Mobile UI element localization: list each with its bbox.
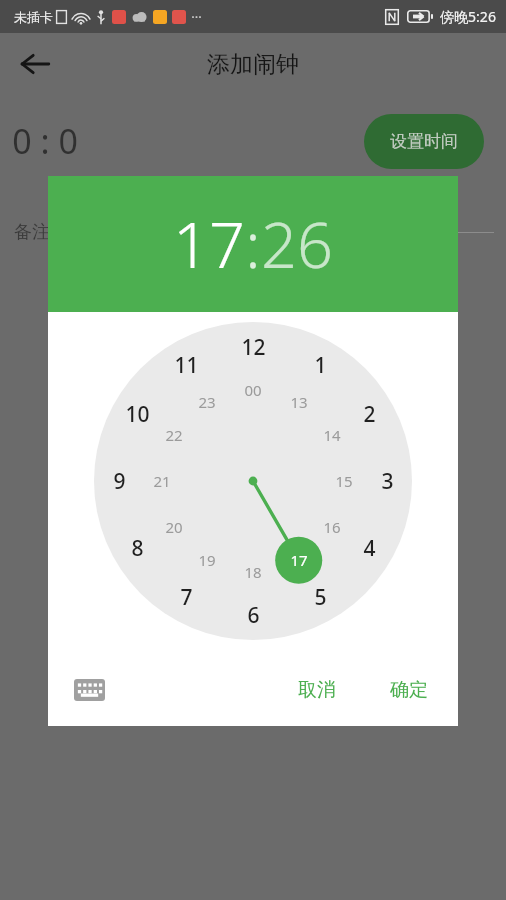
staticText: ···: [191, 8, 202, 26]
staticText: 18: [244, 562, 262, 582]
button[interactable]: 8: [117, 534, 157, 562]
staticText: 00: [244, 380, 262, 400]
staticText: 22: [165, 425, 183, 445]
button[interactable]: 1: [300, 351, 340, 379]
staticText: :: [245, 201, 261, 287]
staticText: 11: [174, 351, 199, 379]
button[interactable]: 00: [233, 376, 273, 404]
staticText: 26: [261, 201, 333, 287]
staticText: 20: [165, 517, 183, 537]
button[interactable]: 12: [233, 333, 273, 361]
button[interactable]: 确定: [376, 668, 442, 712]
staticText: 14: [323, 425, 341, 445]
button[interactable]: 7: [166, 583, 206, 611]
staticText: 19: [198, 550, 216, 570]
staticText: 3: [381, 467, 394, 495]
button[interactable]: 13: [279, 388, 319, 416]
staticText: 确定: [390, 678, 428, 702]
staticText: 15: [335, 471, 353, 491]
staticText: 9: [113, 467, 126, 495]
button[interactable]: 19: [187, 546, 227, 574]
staticText: 7: [180, 583, 193, 611]
button[interactable]: 5: [300, 583, 340, 611]
button[interactable]: 3: [367, 467, 407, 495]
button[interactable]: 22: [154, 421, 194, 449]
staticText: 10: [125, 400, 150, 428]
staticText: 23: [198, 392, 216, 412]
staticText: 17: [290, 550, 308, 570]
staticText: 0 : 0: [12, 118, 78, 164]
button[interactable]: 17: [279, 546, 319, 574]
button[interactable]: 18: [233, 558, 273, 586]
staticText: 未插卡: [14, 9, 53, 25]
button[interactable]: 16: [312, 513, 352, 541]
button[interactable]: 26: [261, 201, 333, 287]
staticText: 17: [173, 201, 245, 287]
button[interactable]: 9: [99, 467, 139, 495]
button[interactable]: 11: [166, 351, 206, 379]
button[interactable]: 设置时间: [364, 114, 484, 169]
staticText: 2: [363, 400, 376, 428]
button[interactable]: 10: [117, 400, 157, 428]
staticText: 添加闹钟: [207, 50, 299, 79]
staticText: 1: [314, 351, 327, 379]
staticText: 备注: [14, 221, 50, 244]
button[interactable]: Keyboard input: [66, 667, 112, 713]
staticText: 6: [247, 601, 260, 629]
button[interactable]: 4: [349, 534, 389, 562]
staticText: 5: [314, 583, 327, 611]
staticText: 12: [241, 333, 266, 361]
staticText: 13: [290, 392, 308, 412]
button[interactable]: 20: [154, 513, 194, 541]
button[interactable]: 6: [233, 601, 273, 629]
button[interactable]: 取消: [284, 668, 350, 712]
staticText: 4: [363, 534, 376, 562]
button[interactable]: 23: [187, 388, 227, 416]
button[interactable]: 15: [324, 467, 364, 495]
staticText: 设置时间: [390, 131, 458, 152]
staticText: 16: [323, 517, 341, 537]
staticText: 21: [153, 471, 171, 491]
staticText: 取消: [298, 678, 336, 702]
button[interactable]: 14: [312, 421, 352, 449]
button[interactable]: Back: [8, 37, 62, 91]
button[interactable]: 21: [142, 467, 182, 495]
staticText: 8: [131, 534, 144, 562]
staticText: 傍晚5:26: [440, 7, 496, 26]
button[interactable]: 2: [349, 400, 389, 428]
button[interactable]: 17: [173, 201, 245, 287]
